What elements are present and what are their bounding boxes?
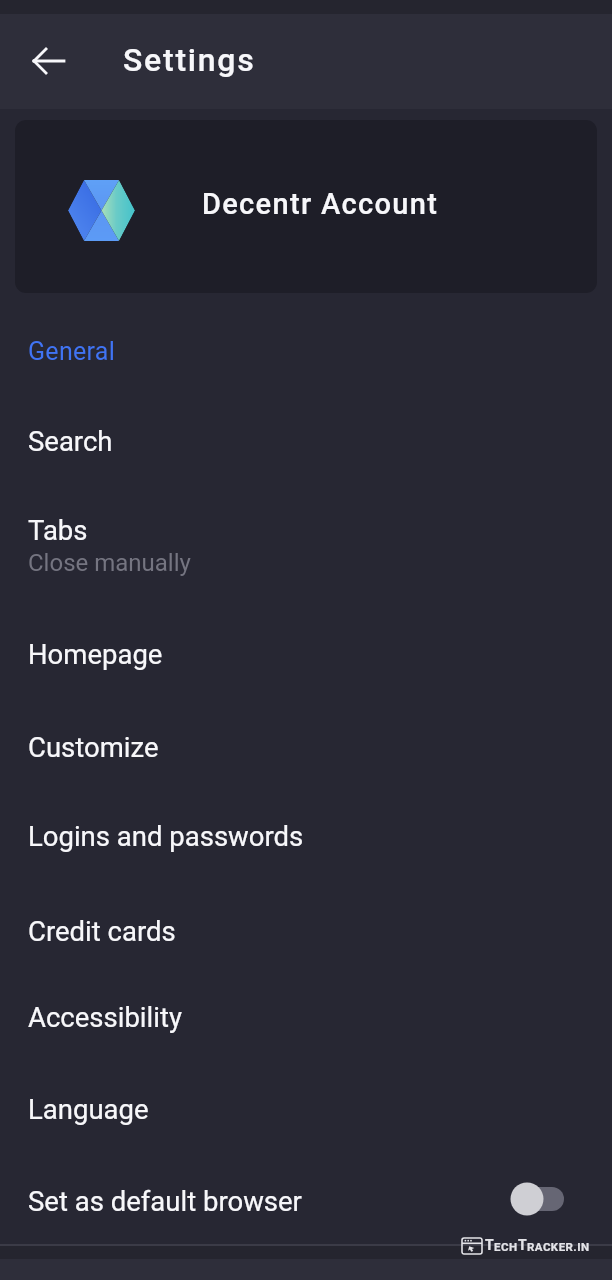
staticText: Logins and passwords [28, 820, 304, 852]
staticText: Search [28, 425, 113, 457]
staticText: Customize [28, 731, 159, 763]
button[interactable]: Customize [0, 702, 612, 793]
staticText: Close manually [28, 549, 191, 577]
staticText: Settings [123, 41, 256, 79]
staticText: Credit cards [28, 915, 176, 947]
staticText: Homepage [28, 638, 163, 670]
staticText: Language [28, 1093, 149, 1125]
staticText: RACKER.IN [527, 1240, 590, 1253]
button[interactable]: Set as default browser [0, 1156, 612, 1247]
button[interactable]: Set as default browser [505, 1181, 567, 1217]
staticText: General [28, 337, 116, 366]
button[interactable]: Credit cards [0, 886, 612, 977]
button[interactable]: Homepage [0, 609, 612, 700]
staticText: ECH [494, 1240, 518, 1253]
button[interactable]: Tabs [0, 485, 612, 576]
button[interactable]: Logins and passwords [0, 791, 612, 882]
button[interactable]: Decentr Account [15, 120, 597, 293]
button[interactable]: Accessibility [0, 972, 612, 1063]
staticText: T [518, 1237, 527, 1253]
staticText: T [485, 1237, 494, 1253]
button[interactable]: Language [0, 1064, 612, 1155]
staticText: Decentr Account [202, 187, 439, 221]
staticText: Set as default browser [28, 1185, 302, 1217]
button[interactable]: Search [0, 396, 612, 487]
button[interactable]: Back [17, 30, 79, 92]
staticText: Tabs [28, 514, 88, 546]
staticText: Accessibility [28, 1001, 182, 1033]
